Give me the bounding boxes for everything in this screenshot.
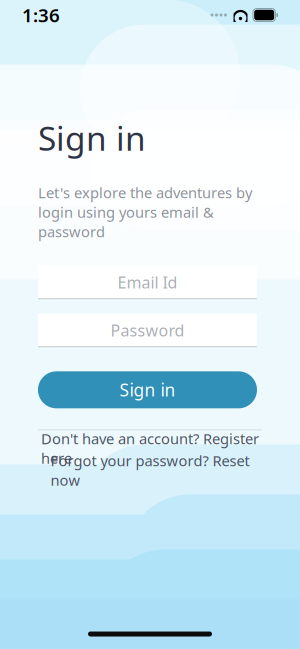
- button[interactable]: Password: [38, 313, 257, 347]
- staticText: Let's explore the adventures by login us…: [38, 183, 252, 241]
- button[interactable]: Forgot your password? Reset now: [38, 459, 262, 481]
- staticText: Email Id: [117, 272, 177, 293]
- staticText: Sign in: [119, 378, 175, 401]
- staticText: Don't have an account? Register here: [41, 429, 259, 468]
- button[interactable]: Email Id: [38, 265, 257, 299]
- staticText: 1:36: [22, 3, 60, 27]
- button[interactable]: Don't have an account? Register here: [38, 437, 262, 459]
- staticText: Password: [110, 320, 184, 341]
- button[interactable]: Sign in: [38, 371, 257, 408]
- staticText: Sign in: [38, 116, 146, 160]
- staticText: Forgot your password? Reset now: [50, 451, 249, 490]
